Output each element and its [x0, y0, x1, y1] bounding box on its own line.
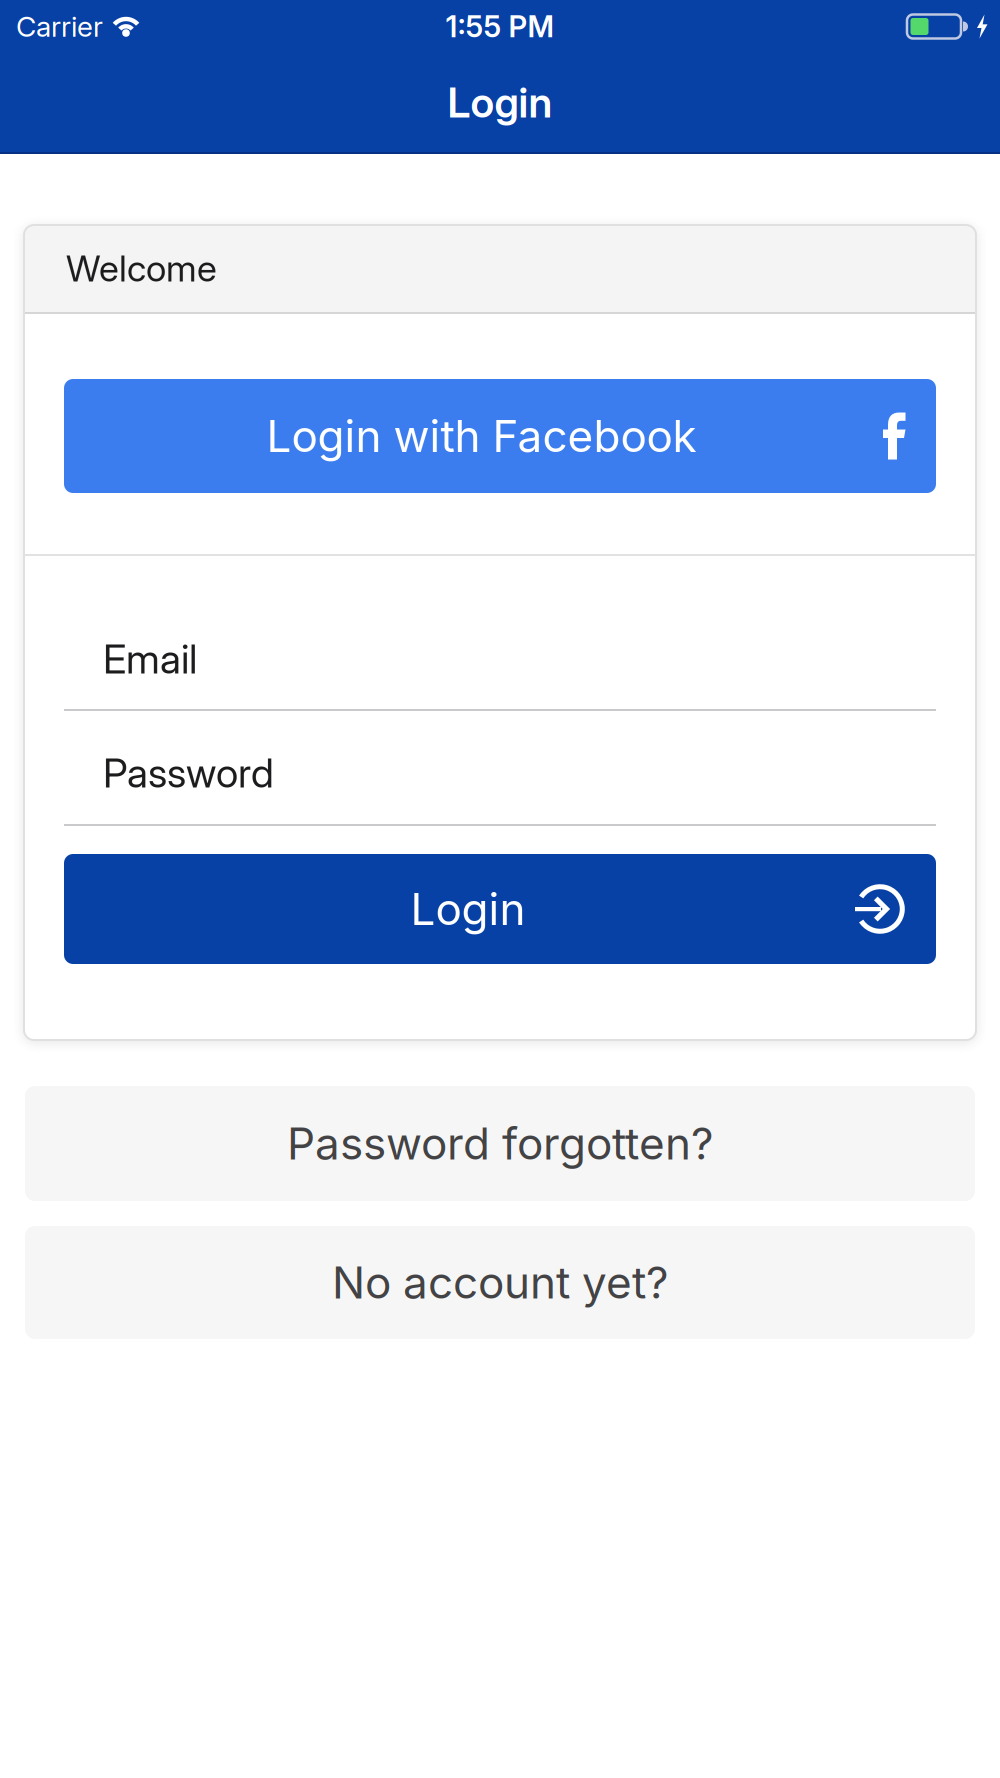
- staticText: Welcome: [66, 247, 217, 290]
- staticText: Login with Facebook: [266, 410, 696, 462]
- button[interactable]: Password forgotten?: [25, 1086, 975, 1201]
- button[interactable]: Login: [64, 854, 936, 964]
- staticText: No account yet?: [332, 1256, 668, 1308]
- button[interactable]: No account yet?: [25, 1226, 975, 1339]
- staticText: Login: [410, 883, 525, 935]
- staticText: Password: [103, 749, 274, 797]
- button[interactable]: Login with Facebook: [64, 379, 936, 493]
- staticText: Carrier: [16, 10, 103, 43]
- staticText: Email: [103, 635, 197, 683]
- staticText: Login: [447, 78, 552, 127]
- staticText: Password forgotten?: [287, 1117, 713, 1169]
- staticText: 1:55 PM: [445, 9, 554, 44]
